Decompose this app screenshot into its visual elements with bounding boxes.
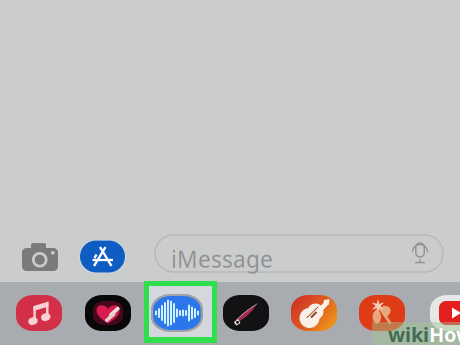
button[interactable]: Camera (12, 235, 68, 279)
button[interactable]: App Store (75, 235, 131, 279)
button[interactable]: Music (10, 290, 68, 336)
button[interactable]: YouTube (424, 290, 460, 336)
staticText: wiki (388, 321, 429, 345)
staticText: iMessage (171, 244, 273, 274)
button[interactable]: Digital Touch (217, 290, 275, 336)
button[interactable]: Clips (353, 290, 411, 336)
button[interactable]: Audio Messages (148, 290, 206, 336)
button[interactable]: iMessage (155, 235, 443, 272)
button[interactable]: GarageBand (285, 290, 343, 336)
button[interactable]: Health (79, 290, 137, 336)
staticText: How (429, 321, 460, 345)
